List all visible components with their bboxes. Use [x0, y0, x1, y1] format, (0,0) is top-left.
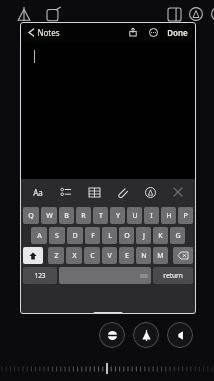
staticText: Notes: [37, 27, 60, 38]
button[interactable]: B: [59, 207, 74, 224]
button[interactable]: R: [76, 207, 91, 224]
button[interactable]: L: [102, 227, 117, 244]
button[interactable]: Markup: [186, 4, 206, 24]
staticText: 123: [34, 271, 46, 280]
staticText: V: [107, 251, 112, 261]
button[interactable]: J: [136, 227, 151, 244]
staticText: U: [132, 211, 138, 221]
button[interactable]: Space: [59, 267, 151, 284]
staticText: R: [81, 211, 86, 221]
staticText: O: [124, 231, 130, 241]
button[interactable]: I: [144, 207, 159, 224]
staticText: K: [158, 231, 163, 241]
button[interactable]: N: [136, 247, 151, 264]
button[interactable]: Checklist: [56, 182, 76, 202]
staticText: Z: [54, 251, 59, 261]
button[interactable]: D: [67, 227, 83, 244]
staticText: C: [90, 251, 95, 261]
button[interactable]: Layout: [164, 4, 184, 24]
button[interactable]: U: [127, 207, 142, 224]
staticText: Y: [116, 211, 120, 221]
button[interactable]: More options: [145, 24, 161, 40]
button[interactable]: V: [102, 247, 117, 264]
staticText: Aa: [33, 187, 43, 198]
staticText: return: [163, 271, 183, 280]
staticText: I: [150, 211, 153, 221]
staticText: N: [141, 251, 147, 261]
staticText: X: [72, 251, 77, 261]
button[interactable]: A: [31, 227, 47, 244]
button[interactable]: X: [66, 247, 82, 264]
staticText: H: [166, 211, 172, 221]
staticText: L: [108, 231, 112, 241]
staticText: G: [175, 231, 181, 241]
button[interactable]: Backspace: [173, 247, 193, 264]
staticText: E: [125, 251, 129, 261]
button[interactable]: Markup: [140, 182, 160, 202]
button[interactable]: Done: [165, 27, 190, 38]
staticText: Done: [167, 27, 188, 38]
staticText: P: [183, 211, 188, 221]
staticText: W: [46, 211, 53, 221]
button[interactable]: More: [208, 4, 214, 24]
button[interactable]: Y: [110, 207, 125, 224]
button[interactable]: T: [93, 207, 108, 224]
button[interactable]: Notes: [26, 25, 62, 40]
button[interactable]: K: [153, 227, 168, 244]
staticText: Q: [28, 211, 34, 221]
button[interactable]: Duplicate: [44, 4, 64, 24]
button[interactable]: Attach: [112, 182, 132, 202]
staticText: T: [99, 211, 103, 221]
button[interactable]: Z: [48, 247, 64, 264]
staticText: D: [72, 231, 78, 241]
button[interactable]: 123: [23, 267, 57, 284]
staticText: F: [91, 231, 95, 241]
button[interactable]: Mirror view: [133, 322, 159, 348]
staticText: B: [64, 211, 69, 221]
button[interactable]: F: [85, 227, 100, 244]
button[interactable]: Table: [84, 182, 104, 202]
button[interactable]: Share: [125, 24, 141, 40]
staticText: M: [157, 251, 164, 261]
button[interactable]: Mirror: [14, 4, 34, 24]
button[interactable]: Shift: [23, 247, 43, 264]
button[interactable]: H: [161, 207, 176, 224]
button[interactable]: G: [170, 227, 185, 244]
button[interactable]: Volume: [167, 322, 193, 348]
button[interactable]: Q: [23, 207, 39, 224]
staticText: S: [55, 231, 59, 241]
button[interactable]: E: [119, 247, 134, 264]
staticText: A: [37, 231, 42, 241]
button[interactable]: Record: [99, 322, 125, 348]
button[interactable]: W: [41, 207, 57, 224]
button[interactable]: C: [84, 247, 100, 264]
staticText: J: [143, 231, 145, 241]
button[interactable]: Text format: [28, 182, 48, 202]
button[interactable]: P: [178, 207, 193, 224]
button[interactable]: S: [49, 227, 65, 244]
button[interactable]: return: [153, 267, 193, 284]
button[interactable]: O: [119, 227, 134, 244]
button[interactable]: M: [153, 247, 168, 264]
button[interactable]: Close keyboard: [168, 182, 188, 202]
